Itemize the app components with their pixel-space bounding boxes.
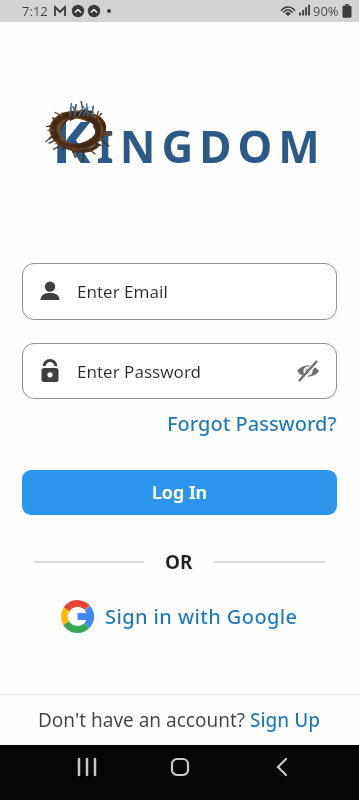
button[interactable] xyxy=(291,354,325,388)
button[interactable] xyxy=(119,745,239,800)
staticText: KINGDOM xyxy=(52,101,326,180)
button[interactable]: Enter Password xyxy=(22,343,337,399)
staticText: Sign in with Google xyxy=(105,603,298,630)
button[interactable] xyxy=(0,745,119,800)
staticText: Don't have an account? xyxy=(38,707,250,733)
button[interactable]: Sign in with Google xyxy=(61,600,298,633)
staticText: 7:12 xyxy=(22,2,48,20)
button[interactable]: Enter Email xyxy=(22,263,337,320)
button[interactable]: Don't have an account? xyxy=(0,695,359,745)
staticText: 90% xyxy=(313,2,339,20)
staticText: Sign Up xyxy=(250,707,321,733)
staticText: Log In xyxy=(152,480,208,505)
button[interactable] xyxy=(239,745,359,800)
staticText: Enter Email xyxy=(77,280,168,303)
button[interactable]: Log In xyxy=(22,470,337,515)
staticText: Enter Password xyxy=(77,360,291,383)
button[interactable]: Forgot Password? xyxy=(167,410,337,437)
staticText: OR xyxy=(165,549,193,575)
